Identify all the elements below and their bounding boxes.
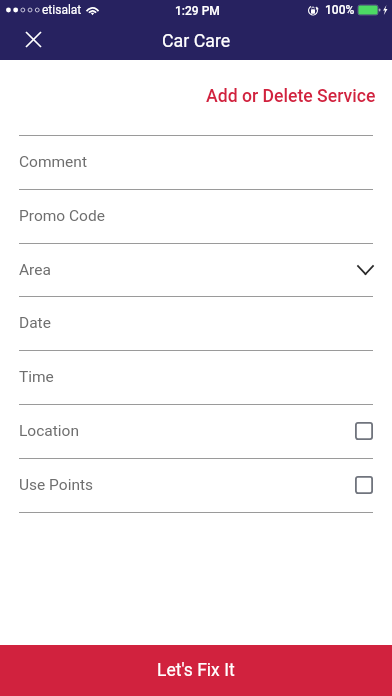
staticText: Add or Delete Service [206, 86, 376, 107]
button[interactable]: Close [18, 24, 48, 54]
button[interactable]: Add or Delete Service [206, 86, 376, 107]
staticText: Car Care [162, 30, 231, 51]
button[interactable]: Area [0, 243, 392, 297]
button[interactable]: Use Points [0, 458, 392, 512]
staticText: Let's Fix It [157, 660, 235, 681]
staticText: Area [19, 261, 51, 279]
button[interactable]: Time [0, 350, 392, 404]
staticText: Promo Code [19, 207, 105, 225]
button[interactable]: Date [0, 296, 392, 350]
staticText: Comment [19, 153, 87, 171]
staticText: 100% [325, 3, 355, 17]
staticText: Location [19, 422, 79, 440]
staticText: Date [19, 314, 51, 332]
button[interactable]: Location [0, 404, 392, 458]
button[interactable]: Let's Fix It [0, 645, 392, 696]
staticText: 1:29 PM [175, 4, 220, 18]
staticText: Use Points [19, 476, 94, 494]
button[interactable]: Comment [0, 135, 392, 189]
staticText: etisalat [42, 3, 82, 17]
staticText: Time [19, 368, 54, 386]
button[interactable]: Promo Code [0, 189, 392, 243]
